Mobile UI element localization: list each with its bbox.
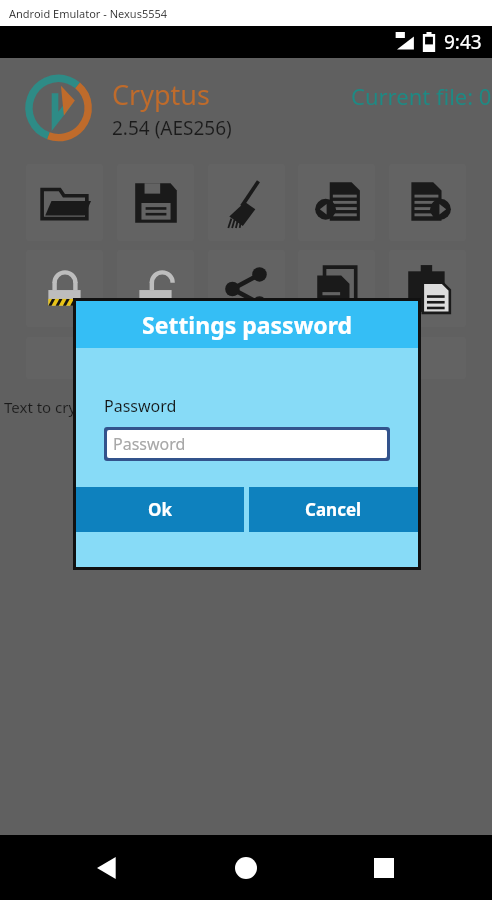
button[interactable]: Paste bbox=[389, 250, 466, 327]
button[interactable]: Ok bbox=[76, 487, 244, 532]
staticText: Current file: 0 bbox=[351, 81, 492, 111]
button[interactable]: Save file bbox=[117, 164, 194, 241]
button[interactable]: Home bbox=[216, 838, 276, 898]
staticText: 9:43 bbox=[444, 29, 482, 55]
staticText: Settings password bbox=[142, 309, 353, 340]
button[interactable]: Encrypt bbox=[26, 250, 103, 327]
staticText: Android Emulator - Nexus5554 bbox=[9, 6, 168, 21]
button[interactable]: Password options bbox=[26, 337, 466, 379]
staticText: Ok bbox=[148, 498, 172, 521]
button[interactable]: Clear bbox=[208, 164, 285, 241]
button[interactable]: Password bbox=[107, 430, 387, 458]
button[interactable]: Cancel bbox=[249, 487, 418, 532]
button[interactable]: Import bbox=[298, 164, 375, 241]
staticText: Cancel bbox=[305, 498, 362, 521]
button[interactable]: Back bbox=[78, 838, 138, 898]
staticText: Password options bbox=[167, 345, 326, 371]
button[interactable]: Recent apps bbox=[354, 838, 414, 898]
staticText: 2.54 (AES256) bbox=[112, 115, 232, 141]
button[interactable]: Share bbox=[208, 250, 285, 327]
staticText: Password bbox=[113, 433, 186, 455]
button[interactable]: Copy document bbox=[298, 250, 375, 327]
button[interactable]: Export bbox=[389, 164, 466, 241]
button[interactable]: Decrypt bbox=[117, 250, 194, 327]
staticText: Text to crypt bbox=[4, 397, 91, 417]
button[interactable]: Open file bbox=[26, 164, 103, 241]
staticText: Cryptus bbox=[112, 76, 210, 113]
staticText: Password bbox=[104, 395, 177, 417]
